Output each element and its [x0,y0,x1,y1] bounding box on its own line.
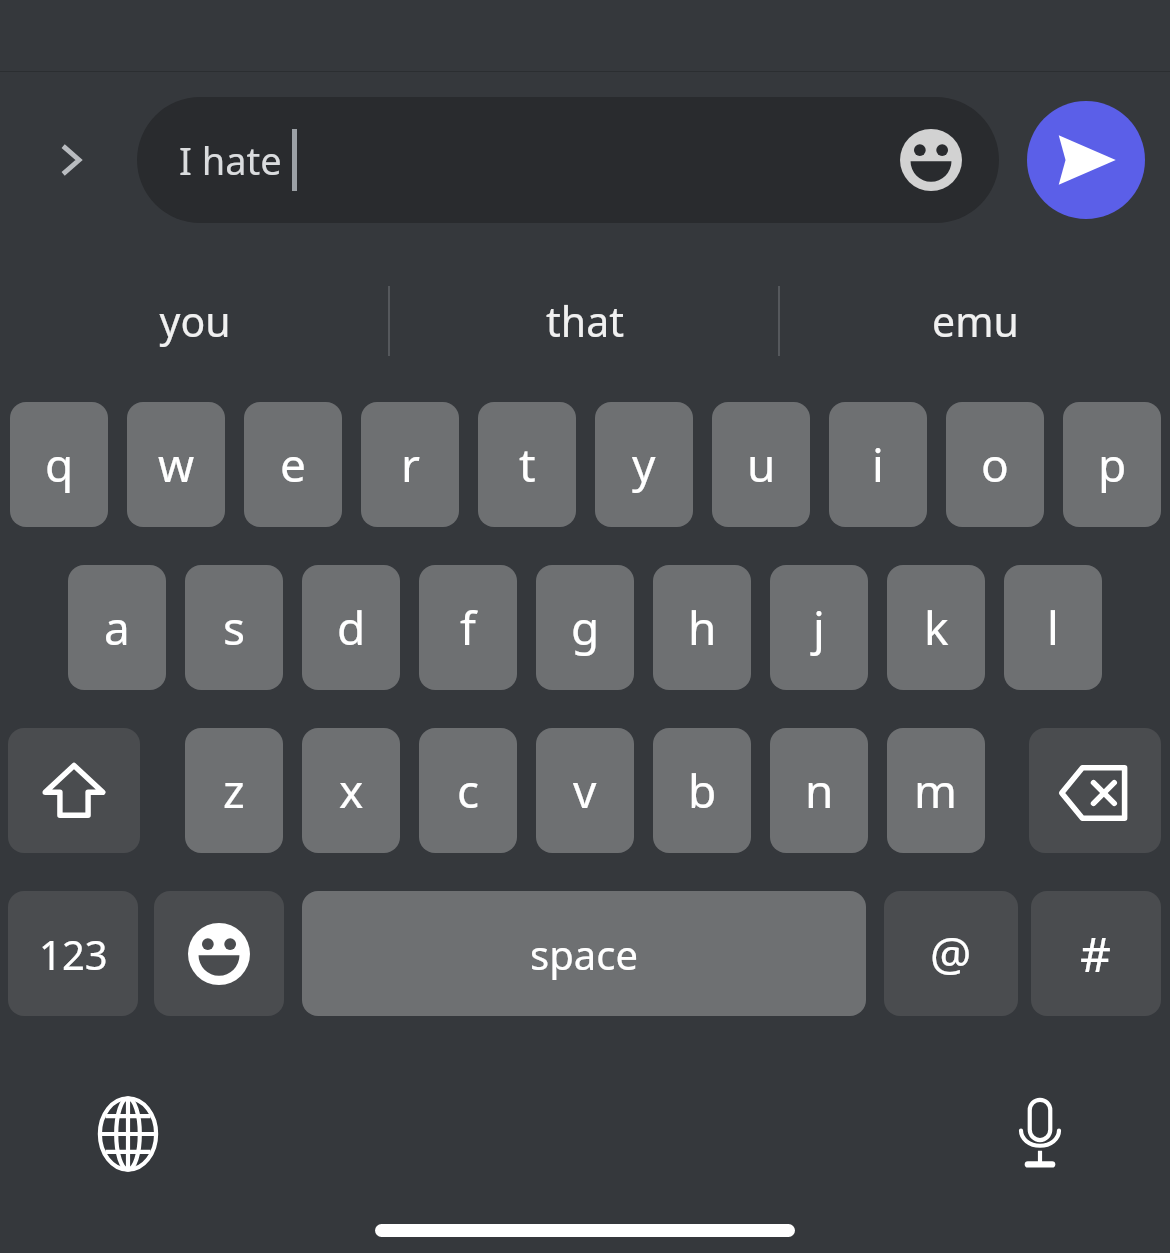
button[interactable]: r [361,402,459,527]
staticText: m [914,759,958,822]
button[interactable]: o [946,402,1044,527]
staticText: f [460,596,476,659]
button[interactable]: Emoji keyboard [154,891,284,1016]
staticText: @ [930,922,972,985]
button[interactable]: Send [1027,101,1145,219]
button[interactable]: z [185,728,283,853]
button[interactable]: j [770,565,868,690]
staticText: a [104,596,130,659]
staticText: e [280,433,306,496]
staticText: you [159,293,231,349]
button[interactable]: Change language [78,1084,178,1184]
staticText: 123 [39,927,108,981]
staticText: d [337,596,366,659]
button[interactable]: e [244,402,342,527]
button[interactable]: v [536,728,634,853]
button[interactable]: d [302,565,400,690]
button[interactable]: Shift [8,728,140,853]
button[interactable]: p [1063,402,1161,527]
staticText: k [924,596,949,659]
staticText: # [1080,921,1112,986]
button[interactable]: 123 [8,891,138,1016]
staticText: v [573,759,597,822]
staticText: x [339,759,364,822]
button[interactable]: emu [780,265,1170,377]
staticText: that [546,293,624,349]
staticText: t [519,433,536,496]
button[interactable]: c [419,728,517,853]
button[interactable]: that [390,265,780,377]
staticText: p [1098,433,1127,496]
button[interactable]: # [1031,891,1161,1016]
staticText: q [45,433,74,496]
staticText: n [805,759,834,822]
button[interactable]: you [0,265,390,377]
staticText: z [223,759,245,822]
button[interactable]: u [712,402,810,527]
button[interactable]: s [185,565,283,690]
staticText: j [813,596,825,659]
button[interactable]: I hate [137,97,999,223]
staticText: r [401,433,420,496]
staticText: g [571,596,600,659]
staticText: s [223,596,246,659]
button[interactable]: Expand [34,122,110,198]
staticText: I hate [179,134,282,186]
button[interactable]: i [829,402,927,527]
staticText: o [981,433,1009,496]
button[interactable]: space [302,891,866,1016]
button[interactable]: n [770,728,868,853]
staticText: y [632,433,656,496]
button[interactable]: x [302,728,400,853]
button[interactable]: a [68,565,166,690]
button[interactable]: b [653,728,751,853]
button[interactable]: m [887,728,985,853]
button[interactable]: q [10,402,108,527]
staticText: h [688,596,717,659]
staticText: space [530,927,638,981]
staticText: u [747,433,776,496]
button[interactable]: g [536,565,634,690]
button[interactable]: y [595,402,693,527]
button[interactable]: t [478,402,576,527]
staticText: i [872,433,884,496]
staticText: c [457,759,480,822]
button[interactable]: @ [884,891,1018,1016]
button[interactable]: h [653,565,751,690]
button[interactable]: Voice input [990,1084,1090,1184]
staticText: b [688,759,717,822]
button[interactable]: w [127,402,225,527]
staticText: emu [932,293,1019,349]
staticText: w [158,433,195,496]
button[interactable]: Emoji [895,124,967,196]
button[interactable]: l [1004,565,1102,690]
button[interactable]: f [419,565,517,690]
button[interactable]: Backspace [1029,728,1161,853]
button[interactable]: k [887,565,985,690]
staticText: l [1047,596,1059,659]
